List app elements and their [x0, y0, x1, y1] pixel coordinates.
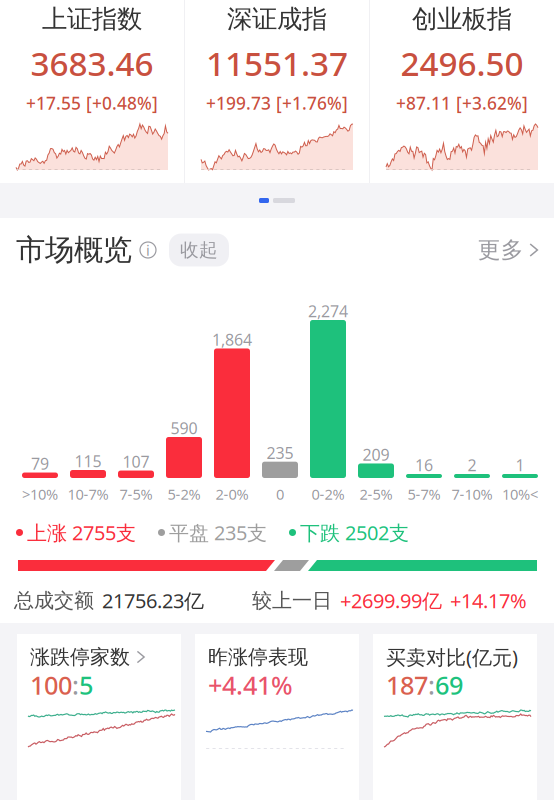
staticText: 10%<	[502, 484, 538, 504]
staticText: +4.41%	[208, 668, 293, 702]
staticText: 69	[435, 668, 463, 702]
staticText: :	[428, 668, 435, 702]
staticText: 深证成指	[227, 3, 327, 34]
staticText: 2-5%	[359, 484, 392, 504]
staticText: 昨涨停表现	[208, 645, 308, 669]
staticText: 2-0%	[215, 484, 248, 504]
staticText: 11551.37	[206, 41, 348, 85]
staticText: 平盘 235支	[169, 519, 267, 546]
staticText: :	[72, 668, 79, 702]
staticText: 187	[386, 668, 428, 702]
button[interactable]: 创业板指	[370, 0, 554, 183]
staticText: 2496.50	[400, 41, 523, 85]
staticText: >10%	[22, 484, 58, 504]
staticText: 21756.23亿	[102, 587, 204, 614]
staticText: 5-7%	[407, 484, 440, 504]
staticText: 7-10%	[451, 484, 492, 504]
staticText: 115	[74, 450, 101, 472]
staticText: 0	[276, 484, 284, 504]
staticText: 较上一日	[252, 588, 332, 613]
staticText: 涨跌停家数	[30, 645, 130, 669]
staticText: 收起	[180, 238, 218, 261]
staticText: +17.55 [+0.48%]	[26, 91, 158, 114]
staticText: 1,864	[212, 329, 252, 350]
staticText: +14.17%	[450, 587, 527, 614]
staticText: 2	[467, 454, 476, 476]
staticText: 235	[266, 442, 293, 463]
staticText: 3683.46	[30, 41, 153, 85]
staticText: 下跌 2502支	[300, 519, 409, 546]
staticText: 16	[415, 454, 433, 476]
staticText: 107	[122, 451, 149, 472]
staticText: 上涨 2755支	[27, 519, 136, 546]
button[interactable]: 涨跌停家数	[17, 634, 181, 800]
button[interactable]: 买卖对比(亿元)	[373, 634, 537, 800]
staticText: 1	[515, 454, 524, 476]
staticText: +87.11 [+3.62%]	[396, 91, 528, 114]
staticText: 创业板指	[412, 3, 512, 34]
staticText: +199.73 [+1.76%]	[206, 91, 348, 114]
button[interactable]: 深证成指	[185, 0, 369, 183]
staticText: 上证指数	[42, 3, 142, 34]
staticText: 7-5%	[119, 484, 152, 504]
staticText: 0-2%	[311, 484, 344, 504]
staticText: 买卖对比(亿元)	[386, 644, 518, 670]
staticText: i	[146, 240, 150, 260]
staticText: 79	[31, 453, 49, 474]
staticText: 5-2%	[167, 484, 200, 504]
staticText: 209	[362, 444, 389, 465]
button[interactable]: 上证指数	[0, 0, 184, 183]
staticText: +2699.99亿	[340, 587, 442, 614]
staticText: 100	[30, 668, 72, 702]
staticText: 10-7%	[67, 484, 108, 504]
button[interactable]: 昨涨停表现	[195, 634, 359, 800]
staticText: 更多	[478, 236, 524, 264]
staticText: 市场概览	[16, 232, 132, 268]
button[interactable]: 收起	[169, 233, 229, 266]
staticText: 590	[170, 417, 197, 439]
staticText: 5	[79, 668, 93, 702]
staticText: 2,274	[308, 300, 348, 322]
staticText: 总成交额	[14, 588, 94, 613]
button[interactable]: 更多	[478, 236, 538, 264]
